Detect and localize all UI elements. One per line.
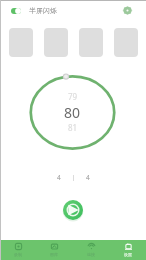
button[interactable]	[9, 28, 33, 57]
button[interactable]: 设置	[109, 240, 146, 260]
button[interactable]	[114, 28, 138, 57]
staticText: 图库	[50, 252, 58, 257]
staticText: 录制	[14, 252, 22, 257]
staticText: 设置	[124, 252, 132, 257]
button[interactable]: 连接	[72, 240, 109, 260]
staticText: 80	[64, 103, 81, 122]
button[interactable]: 半屏闪烁	[11, 6, 57, 15]
staticText: 4	[57, 173, 61, 182]
button[interactable]: 79	[29, 74, 116, 151]
staticText: 79	[68, 91, 78, 102]
button[interactable]: Settings	[123, 6, 132, 15]
button[interactable]: 图库	[36, 240, 72, 260]
staticText: 半屏闪烁	[29, 6, 57, 15]
staticText: 81	[68, 122, 78, 133]
button[interactable]	[79, 28, 103, 57]
button[interactable]	[44, 28, 68, 57]
staticText: 4	[86, 173, 90, 182]
button[interactable]: Play	[62, 199, 84, 221]
staticText: 连接	[87, 252, 95, 257]
button[interactable]: 录制	[0, 240, 36, 260]
